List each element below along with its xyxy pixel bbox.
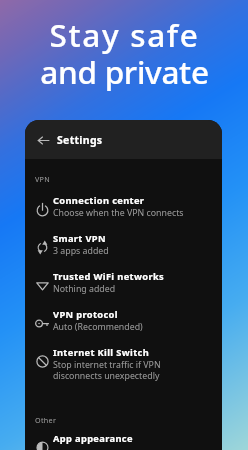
button[interactable]: App appearance [25,425,222,449]
staticText: Internet Kill Switch [53,346,150,359]
button[interactable]: Back [31,128,55,152]
staticText: Nothing added [53,283,116,295]
staticText: and private [40,50,209,93]
staticText: Trusted WiFi networks [53,270,165,283]
staticText: Smart VPN [53,232,106,245]
button[interactable]: Smart VPN [25,219,222,257]
staticText: Other [35,415,57,425]
staticText: Connection center [53,194,145,207]
button[interactable]: Trusted WiFi networks [25,257,222,295]
button[interactable]: Internet Kill Switch [25,333,222,382]
staticText: Stop internet traffic if VPN disconnects… [53,359,161,382]
staticText: Choose when the VPN connects [53,207,184,219]
staticText: VPN [35,174,51,184]
button[interactable]: VPN protocol [25,295,222,333]
staticText: Settings [57,133,103,147]
staticText: 3 apps added [53,245,109,257]
staticText: App appearance [53,432,133,445]
staticText: Auto (Recommended) [53,321,143,333]
button[interactable]: Connection center [25,184,222,219]
staticText: Stay safe [49,13,200,56]
staticText: VPN protocol [53,308,118,321]
